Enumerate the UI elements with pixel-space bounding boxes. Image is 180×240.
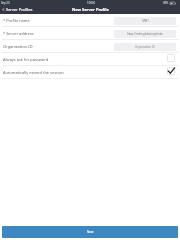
button[interactable]: Save xyxy=(2,226,178,238)
staticText: Organization-ID xyxy=(3,44,33,49)
staticText: 10:04 xyxy=(87,1,95,5)
staticText: * Server address xyxy=(3,31,34,36)
staticText: Automatically extend the session xyxy=(3,70,64,75)
button[interactable]: Automatically extend the session xyxy=(0,66,180,79)
button[interactable]: Organization-ID xyxy=(0,40,180,53)
button[interactable]: * Profile name xyxy=(0,14,180,27)
staticText: Always ask for password xyxy=(3,57,49,62)
button[interactable]: Checked xyxy=(166,66,176,76)
button[interactable]: * Server address xyxy=(0,27,180,40)
staticText: https://mdm.global.org/mdm xyxy=(127,32,163,36)
button[interactable]: https://mdm.global.org/mdm xyxy=(114,30,176,38)
staticText: New Server Profile xyxy=(72,7,109,12)
staticText: MW1 xyxy=(142,19,149,23)
staticText: * Profile name xyxy=(3,18,30,23)
staticText: Save xyxy=(87,230,94,234)
button[interactable]: Unchecked xyxy=(166,53,176,63)
button[interactable]: Back xyxy=(0,5,35,14)
other: Back xyxy=(2,8,5,11)
button[interactable]: Always ask for password xyxy=(0,53,180,66)
button[interactable]: Organization ID xyxy=(114,43,176,51)
staticText: Organization ID xyxy=(135,45,155,49)
button[interactable]: MW1 xyxy=(114,17,176,25)
staticText: 39% xyxy=(163,1,169,5)
staticText: Sep 23 xyxy=(1,1,10,5)
staticText: Server Profiles xyxy=(6,7,33,12)
